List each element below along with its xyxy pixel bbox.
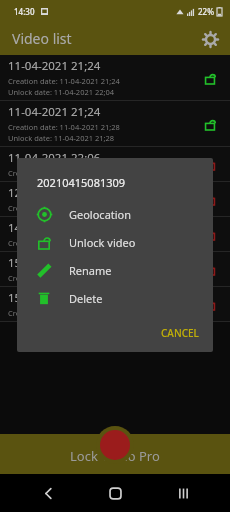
button[interactable]: 11-04-2021 21;24 <box>0 101 230 147</box>
button[interactable]: 15-04-2021 07;46 <box>0 252 230 287</box>
staticText: Creation date: 15-04-2021 08;12 <box>8 273 120 283</box>
button[interactable]: 14-04-2021 18;22 <box>0 217 230 252</box>
staticText: 20210415081309 <box>37 175 126 190</box>
button[interactable]: 12-04-2021 09;15 <box>0 182 230 217</box>
staticText: Unlock date: 11-04-2021 22;04 <box>8 87 115 97</box>
button[interactable]: Unlock video <box>17 228 213 256</box>
staticText: Creation date: 11-04-2021 21;28 <box>8 122 120 132</box>
other: Locked <box>200 224 220 244</box>
button[interactable]: Rename <box>17 256 213 284</box>
staticText: 15-04-2021 07;46 <box>8 255 101 271</box>
staticText: 22% <box>198 6 214 17</box>
button[interactable]: Home <box>95 474 135 512</box>
staticText: Delete <box>69 291 103 306</box>
staticText: Creation date: 12-04-2021 09;15 <box>8 203 120 213</box>
staticText: Creation date: 11-04-2021 21;24 <box>8 76 120 86</box>
button[interactable]: 11-04-2021 21;24 <box>0 55 230 101</box>
staticText: 11-04-2021 22;06 <box>8 150 101 166</box>
other: Locked <box>200 259 220 279</box>
staticText: 14:30 <box>14 6 35 17</box>
staticText: CANCEL <box>161 326 199 340</box>
staticText: 11-04-2021 21;24 <box>8 58 101 74</box>
staticText: Lock Video Pro <box>70 447 160 465</box>
staticText: 11-04-2021 21;24 <box>8 104 101 120</box>
button[interactable]: Geolocation <box>17 200 213 228</box>
button[interactable]: Back <box>28 474 68 512</box>
button[interactable]: Recent apps <box>163 474 203 512</box>
other: Locked <box>200 189 220 209</box>
staticText: Creation date: 11-04-2021 22;10 <box>8 168 120 178</box>
staticText: Rename <box>69 263 112 278</box>
other: Locked <box>200 154 220 174</box>
staticText: Unlock video <box>69 235 136 250</box>
button[interactable]: CANCEL <box>147 320 213 346</box>
button[interactable]: Delete <box>17 284 213 312</box>
button[interactable]: Record video <box>100 430 130 460</box>
staticText: Geolocation <box>69 207 132 222</box>
button[interactable]: 15-04-2021 08;13 <box>0 287 230 322</box>
staticText: Creation date: 15-04-2021 08;14 <box>8 308 120 318</box>
staticText: Video list <box>12 29 72 48</box>
other: Unlocked <box>200 114 220 134</box>
other: Unlocked <box>200 68 220 88</box>
staticText: Unlock date: 11-04-2021 21;28 <box>8 133 115 143</box>
staticText: 14-04-2021 18;22 <box>8 220 101 236</box>
button[interactable]: 11-04-2021 22;06 <box>0 147 230 182</box>
staticText: 15-04-2021 08;13 <box>8 290 101 306</box>
button[interactable]: Settings <box>196 25 224 53</box>
staticText: 12-04-2021 09;15 <box>8 185 101 201</box>
other: Locked <box>200 294 220 314</box>
staticText: Creation date: 14-04-2021 18;24 <box>8 238 120 248</box>
